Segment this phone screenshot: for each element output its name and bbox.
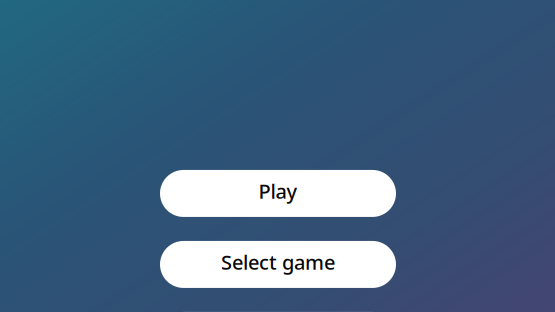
- staticText: Select game: [221, 249, 335, 275]
- staticText: Play: [258, 178, 297, 204]
- button[interactable]: Play: [160, 170, 396, 217]
- button[interactable]: Select game: [160, 241, 396, 288]
